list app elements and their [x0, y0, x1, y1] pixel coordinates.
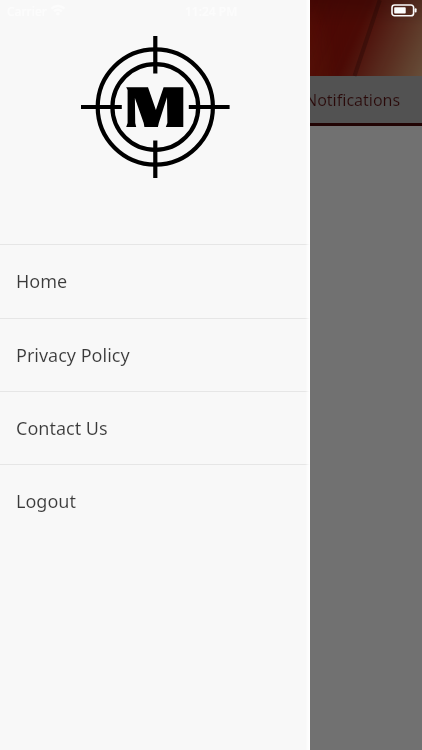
- staticText: Notifications: [305, 89, 401, 111]
- staticText: Home: [16, 269, 68, 294]
- staticText: Logout: [16, 489, 76, 514]
- button[interactable]: Contact Us: [0, 392, 310, 464]
- button[interactable]: Home: [0, 245, 310, 318]
- staticText: Contact Us: [16, 416, 108, 441]
- staticText: Privacy Policy: [16, 343, 130, 368]
- button[interactable]: Privacy Policy: [0, 319, 310, 391]
- button[interactable]: Logout: [0, 465, 310, 538]
